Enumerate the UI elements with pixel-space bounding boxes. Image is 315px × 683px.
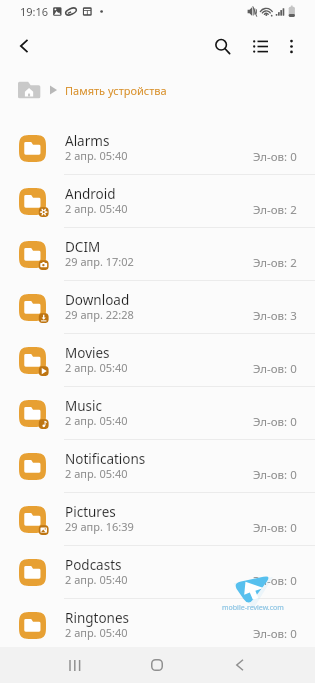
staticText: Music	[65, 397, 103, 415]
button[interactable]: Android	[0, 175, 315, 228]
staticText: Эл-ов: 0	[253, 520, 297, 536]
staticText: Эл-ов: 0	[253, 361, 297, 377]
staticText: mobile-review.com	[222, 603, 284, 613]
staticText: Эл-ов: 0	[253, 149, 297, 165]
button[interactable]: Back	[8, 30, 40, 62]
button[interactable]: Pictures	[0, 493, 315, 546]
staticText: Эл-ов: 0	[253, 573, 297, 589]
staticText: Эл-ов: 0	[253, 626, 297, 642]
button[interactable]: More options	[275, 30, 307, 62]
staticText: Notifications	[65, 450, 146, 468]
button[interactable]: Music	[0, 387, 315, 440]
staticText: 2 апр. 05:40	[65, 625, 128, 640]
staticText: 19:16	[20, 4, 49, 19]
button[interactable]: Ringtones	[0, 599, 315, 652]
staticText: Эл-ов: 0	[253, 414, 297, 430]
staticText: Podcasts	[65, 556, 122, 574]
staticText: Эл-ов: 3	[253, 308, 297, 324]
staticText: 29 апр. 16:39	[65, 519, 134, 534]
button[interactable]: Home	[135, 653, 179, 677]
staticText: 29 апр. 17:02	[65, 254, 134, 269]
staticText: 2 апр. 05:40	[65, 201, 128, 216]
staticText: Память устройства	[65, 83, 167, 98]
button[interactable]: DCIM	[0, 228, 315, 281]
staticText: 2 апр. 05:40	[65, 413, 128, 428]
button[interactable]: Download	[0, 281, 315, 334]
staticText: DCIM	[65, 238, 101, 256]
staticText: Movies	[65, 344, 110, 362]
staticText: Эл-ов: 2	[253, 202, 297, 218]
staticText: Alarms	[65, 132, 110, 150]
staticText: Эл-ов: 0	[253, 467, 297, 483]
staticText: Android	[65, 185, 116, 203]
button[interactable]: Podcasts	[0, 546, 315, 599]
staticText: 2 апр. 05:40	[65, 466, 128, 481]
button[interactable]: Device storage root	[18, 81, 42, 100]
staticText: 2 апр. 05:40	[65, 148, 128, 163]
staticText: Эл-ов: 2	[253, 255, 297, 271]
staticText: 2 апр. 05:40	[65, 360, 128, 375]
staticText: Ringtones	[65, 609, 129, 627]
staticText: Download	[65, 291, 130, 309]
button[interactable]: View as list	[244, 30, 276, 62]
staticText: 2 апр. 05:40	[65, 572, 128, 587]
staticText: Pictures	[65, 503, 116, 521]
button[interactable]: Notifications	[0, 440, 315, 493]
button[interactable]: Recents	[53, 653, 97, 677]
button[interactable]: Movies	[0, 334, 315, 387]
button[interactable]: Alarms	[0, 122, 315, 175]
button[interactable]: Back	[217, 653, 261, 677]
button[interactable]: Search	[206, 30, 238, 62]
staticText: 29 апр. 22:28	[65, 307, 134, 322]
button[interactable]: Память устройства	[65, 83, 167, 98]
